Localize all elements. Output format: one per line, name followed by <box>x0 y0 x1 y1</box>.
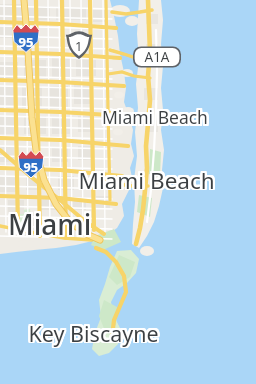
button[interactable]: Map of Miami and Miami Beach <box>0 0 256 384</box>
